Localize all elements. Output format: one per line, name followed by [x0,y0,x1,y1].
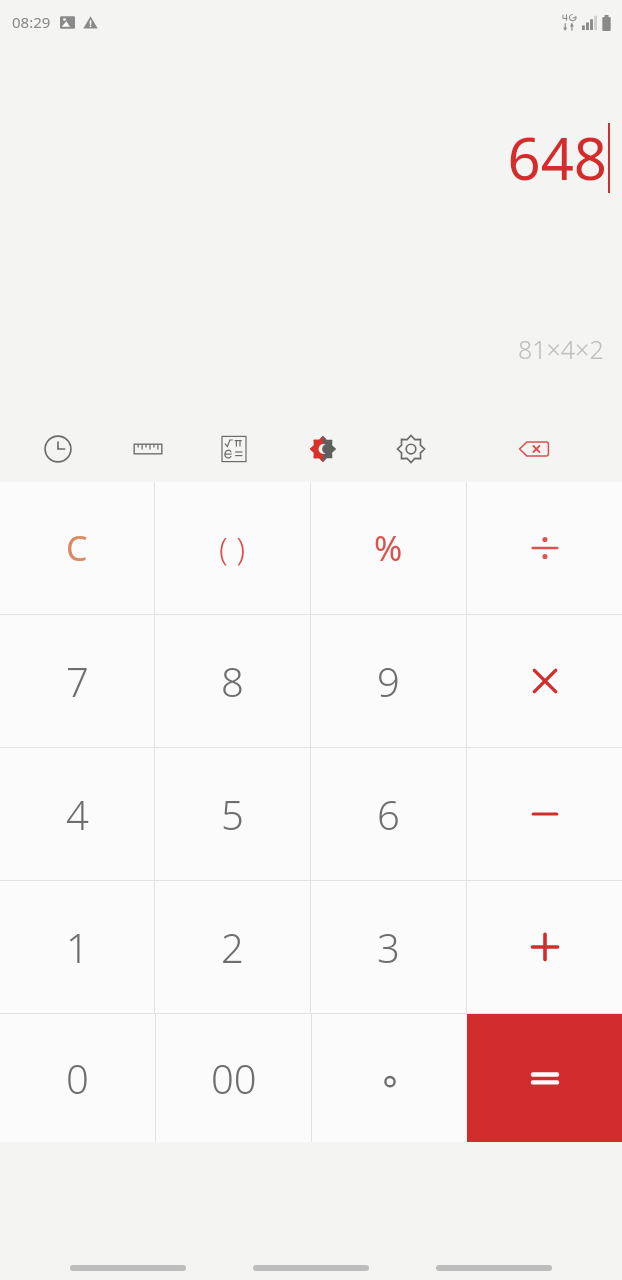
button[interactable]: 1 [0,881,154,1013]
staticText: ( ) [219,526,246,570]
button[interactable]: 2 [155,881,310,1013]
button[interactable]: 7 [0,615,154,747]
button[interactable]: 8 [155,615,310,747]
button[interactable]: Unit converter [123,424,173,474]
button[interactable]: Minus [467,748,622,880]
staticText: 81×4×2 [518,332,604,366]
button[interactable]: Theme [298,424,348,474]
staticText: 2 [221,920,244,974]
staticText: 9 [377,654,400,708]
staticText: 8 [221,654,244,708]
button[interactable]: C [0,482,154,614]
staticText: 648 [507,118,607,197]
button[interactable]: 6 [311,748,466,880]
button[interactable]: Equals [467,1014,622,1142]
staticText: 5 [221,787,244,841]
button[interactable]: Multiply [467,615,622,747]
staticText: 0 [66,1051,89,1105]
staticText: 4 [66,787,89,841]
button[interactable]: ( ) [155,482,310,614]
button[interactable]: Navigation [253,1265,369,1271]
button[interactable]: Settings [386,424,436,474]
button[interactable]: Navigation [70,1265,186,1271]
staticText: 00 [211,1051,257,1105]
button[interactable]: 4 [0,748,154,880]
button[interactable]: Navigation [436,1265,552,1271]
staticText: 1 [66,920,89,974]
button[interactable]: 00 [156,1014,311,1142]
button[interactable]: History [33,424,83,474]
button[interactable]: Decimal point [312,1014,467,1142]
staticText: 08:29 [12,12,51,32]
staticText: 3 [377,920,400,974]
staticText: C [66,525,88,571]
button[interactable]: 5 [155,748,310,880]
staticText: 6 [377,787,400,841]
button[interactable]: 0 [0,1014,155,1142]
button[interactable]: 3 [311,881,466,1013]
button[interactable]: Plus [467,881,622,1013]
staticText: 7 [66,654,89,708]
button[interactable]: 9 [311,615,466,747]
button[interactable]: Formulas [209,424,259,474]
button[interactable]: % [311,482,466,614]
button[interactable]: Divide [467,482,622,614]
staticText: % [374,525,403,571]
button[interactable]: Backspace [509,424,559,474]
